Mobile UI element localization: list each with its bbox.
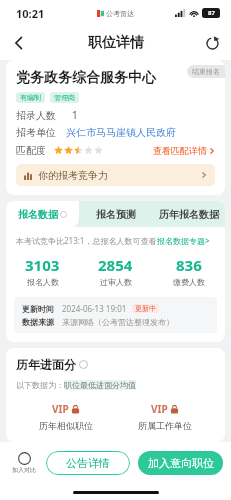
staticText: 公告详情 bbox=[66, 456, 110, 470]
staticText: 3103 bbox=[25, 255, 60, 275]
staticText: 更新中 bbox=[135, 304, 156, 313]
staticText: 所属工作单位 bbox=[138, 420, 192, 431]
button[interactable]: Back bbox=[4, 28, 34, 58]
staticText: 2024-06-13 19:01 bbox=[62, 303, 127, 314]
button[interactable]: VIP bbox=[115, 402, 215, 431]
staticText: 来源网络（公考雷达整理发布） bbox=[62, 317, 174, 327]
button[interactable]: 报名数据 bbox=[6, 201, 79, 227]
other: Compare bbox=[18, 452, 31, 465]
staticText: 10:21 bbox=[16, 6, 45, 21]
staticText: 报名数据专题> bbox=[157, 235, 210, 246]
staticText: 职位详情 bbox=[88, 34, 144, 52]
button[interactable]: Compare bbox=[8, 452, 40, 474]
button[interactable]: 公告详情 bbox=[46, 451, 130, 475]
staticText: 党务政务综合服务中心 bbox=[16, 69, 156, 87]
staticText: 数据来源 bbox=[22, 317, 54, 327]
staticText: 你的报考竞争力 bbox=[38, 169, 108, 182]
button[interactable]: 加入意向职位 bbox=[138, 451, 223, 475]
staticText: 报名人数 bbox=[27, 277, 59, 287]
button[interactable]: 查看匹配详情 bbox=[153, 145, 215, 156]
staticText: VIP bbox=[151, 402, 168, 416]
staticText: 查看匹配详情 bbox=[153, 145, 207, 156]
staticText: 2854 bbox=[98, 255, 133, 275]
button[interactable]: 你的报考竞争力 bbox=[16, 164, 215, 186]
button[interactable]: VIP bbox=[16, 402, 115, 431]
button[interactable]: Refresh bbox=[197, 28, 227, 58]
other: VIP locked bbox=[71, 405, 80, 414]
staticText: 加入意向职位 bbox=[148, 456, 214, 470]
staticText: 有编制 bbox=[20, 93, 41, 102]
staticText: 历年进面分 bbox=[16, 357, 76, 372]
staticText: 招录人数 bbox=[16, 109, 56, 122]
staticText: 836 bbox=[176, 255, 202, 275]
staticText: 报名数据 bbox=[18, 208, 58, 221]
other: VIP locked bbox=[170, 405, 179, 414]
staticText: 本考试竞争比213:1，总报名人数可查看 bbox=[16, 235, 157, 246]
staticText: 以下数据为： bbox=[16, 380, 64, 390]
staticText: 更新时间 bbox=[22, 304, 54, 314]
staticText: 兴仁市马马崖镇人民政府 bbox=[66, 126, 176, 139]
button[interactable]: 报名预测 bbox=[79, 201, 152, 227]
staticText: 结束报名 bbox=[192, 67, 220, 76]
staticText: 87 bbox=[208, 9, 215, 17]
staticText: 1 bbox=[72, 108, 78, 122]
staticText: 报名预测 bbox=[96, 208, 136, 221]
button[interactable]: 本考试竞争比213:1，总报名人数可查看 bbox=[16, 235, 225, 246]
staticText: VIP bbox=[52, 402, 69, 416]
staticText: 加入对比 bbox=[12, 466, 36, 474]
staticText: 职位最低进面分均值 bbox=[64, 380, 136, 390]
staticText: 招考单位 bbox=[16, 126, 56, 139]
staticText: 管理岗 bbox=[54, 93, 75, 102]
staticText: 匹配度 bbox=[16, 144, 46, 157]
button[interactable]: 历年报名数据 bbox=[152, 201, 225, 227]
staticText: 公考雷达 bbox=[106, 9, 134, 18]
staticText: 过审人数 bbox=[100, 277, 132, 287]
staticText: 历年报名数据 bbox=[159, 208, 219, 221]
staticText: 历年相似职位 bbox=[39, 420, 93, 431]
staticText: 缴费人数 bbox=[173, 277, 205, 287]
